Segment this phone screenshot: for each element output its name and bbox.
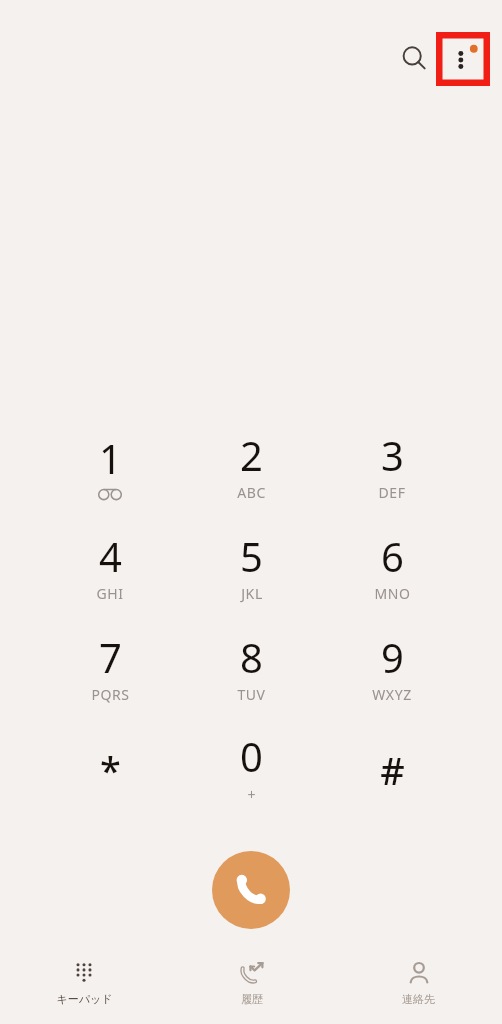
- staticText: 7: [99, 630, 122, 684]
- staticText: 2: [240, 428, 263, 482]
- staticText: 9: [381, 630, 404, 684]
- staticText: 4: [99, 529, 122, 583]
- button[interactable]: キーパッド: [0, 946, 168, 1024]
- button[interactable]: Call: [212, 851, 290, 929]
- staticText: WXYZ: [372, 685, 412, 704]
- staticText: MNO: [374, 584, 411, 603]
- button[interactable]: 0: [191, 720, 311, 812]
- staticText: 1: [99, 431, 122, 485]
- button[interactable]: 6: [332, 520, 452, 612]
- staticText: 5: [240, 529, 263, 583]
- button[interactable]: More options: [436, 32, 490, 86]
- button[interactable]: 履歴: [168, 946, 335, 1024]
- staticText: GHI: [96, 584, 124, 603]
- staticText: 3: [381, 428, 404, 482]
- button[interactable]: 4: [50, 520, 170, 612]
- staticText: *: [100, 744, 121, 788]
- button[interactable]: 8: [191, 621, 311, 713]
- staticText: ABC: [237, 483, 266, 502]
- staticText: DEF: [378, 483, 406, 502]
- button[interactable]: 5: [191, 520, 311, 612]
- button[interactable]: 7: [50, 621, 170, 713]
- staticText: キーパッド: [56, 992, 113, 1006]
- button[interactable]: 9: [332, 621, 452, 713]
- staticText: 履歴: [241, 992, 263, 1006]
- staticText: JKL: [241, 584, 263, 603]
- button[interactable]: #: [332, 720, 452, 812]
- staticText: PQRS: [91, 685, 130, 704]
- button[interactable]: Search: [390, 34, 438, 82]
- button[interactable]: 1: [50, 419, 170, 511]
- button[interactable]: 3: [332, 419, 452, 511]
- staticText: 8: [240, 630, 263, 684]
- staticText: #: [380, 744, 405, 788]
- button[interactable]: *: [50, 720, 170, 812]
- staticText: 0: [240, 729, 263, 783]
- staticText: 連絡先: [402, 992, 435, 1006]
- staticText: 6: [381, 529, 404, 583]
- staticText: +: [247, 785, 256, 804]
- button[interactable]: 連絡先: [335, 946, 502, 1024]
- staticText: TUV: [237, 685, 266, 704]
- button[interactable]: 2: [191, 419, 311, 511]
